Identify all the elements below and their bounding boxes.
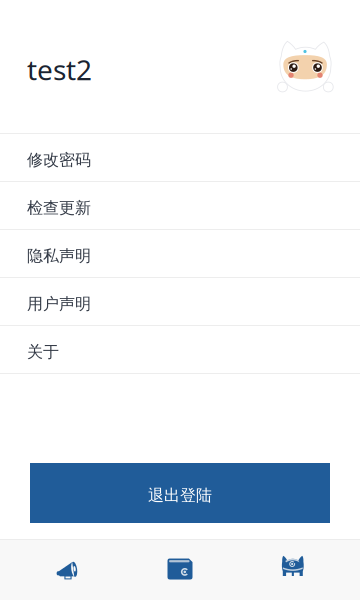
staticText: 退出登陆 xyxy=(148,486,212,505)
button[interactable]: 用户声明 xyxy=(0,277,360,325)
button[interactable]: 退出登陆 xyxy=(30,463,330,523)
button[interactable]: 检查更新 xyxy=(0,181,360,229)
button[interactable]: Promotions xyxy=(0,540,120,600)
button[interactable]: 关于 xyxy=(0,325,360,373)
staticText: 关于 xyxy=(27,342,59,362)
staticText: 修改密码 xyxy=(27,150,91,170)
staticText: test2 xyxy=(27,51,92,88)
staticText: 用户声明 xyxy=(27,294,91,314)
staticText: 隐私声明 xyxy=(27,246,91,266)
button[interactable]: Profile xyxy=(240,540,360,600)
button[interactable]: 修改密码 xyxy=(0,133,360,181)
button[interactable]: Wallet xyxy=(120,540,240,600)
staticText: 检查更新 xyxy=(27,198,91,218)
button[interactable]: 隐私声明 xyxy=(0,229,360,277)
